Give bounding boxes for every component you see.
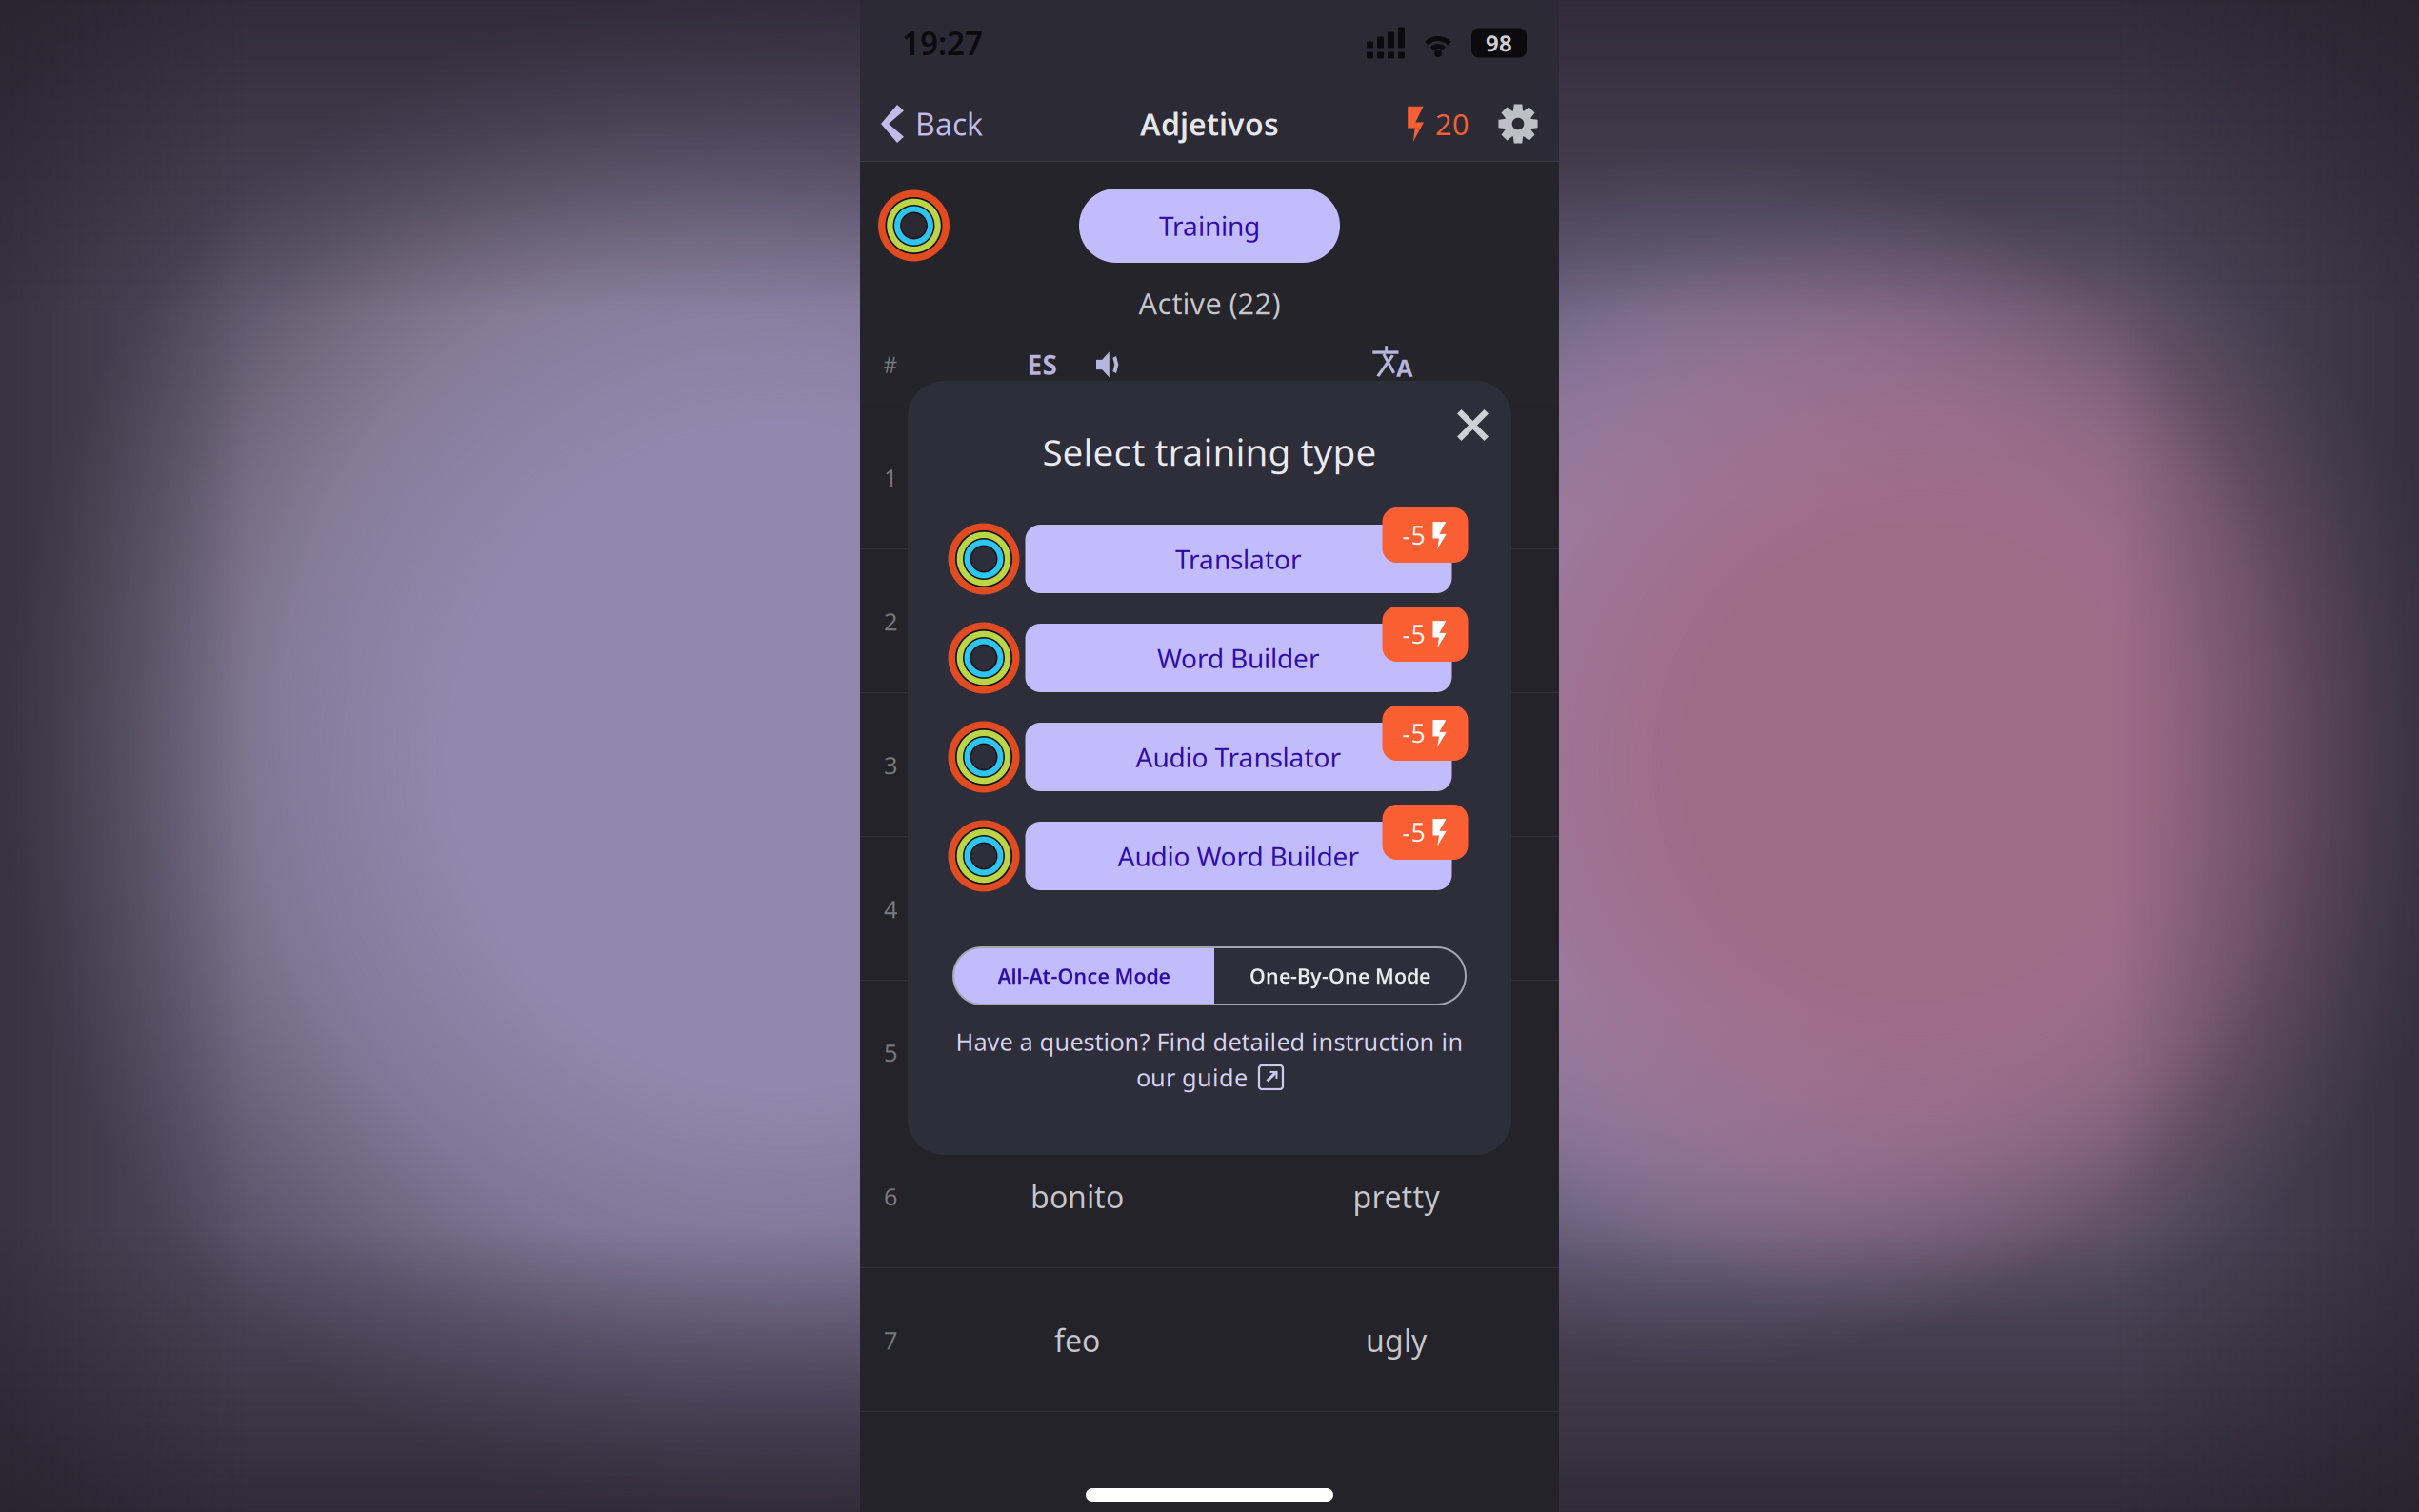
button[interactable]: One-By-One Mode [1214,947,1466,1005]
button[interactable]: 1 [860,406,1559,549]
staticText: 1 [884,462,897,493]
staticText: ugly [1366,1320,1427,1360]
button[interactable]: 4 [860,837,1559,981]
staticText: feo [1054,1320,1100,1360]
button[interactable]: 2 [860,549,1559,693]
staticText: 5 [884,1037,897,1069]
staticText: 98 [1486,28,1512,58]
staticText: 19:27 [902,22,983,64]
button[interactable]: All-At-Once Mode [953,947,1214,1005]
staticText: Translator [1175,541,1302,577]
button[interactable]: 20 [1407,91,1469,156]
staticText: Training [1159,208,1260,243]
button[interactable]: Audio Translator [948,706,1471,791]
staticText: A [1396,351,1413,383]
button[interactable]: Word Builder [948,607,1471,692]
staticText: 20 [1435,104,1469,143]
staticText: ES [1027,347,1057,382]
staticText: -5 [1402,815,1425,849]
staticText: Adjetivos [1140,104,1279,144]
button[interactable]: 6 [860,1124,1559,1268]
staticText: 7 [884,1324,897,1356]
button[interactable]: Audio Word Builder [948,805,1471,890]
staticText: # [883,350,898,379]
staticText: 4 [884,893,897,925]
staticText: Active (22) [1139,284,1280,322]
button[interactable]: 5 [860,981,1559,1124]
staticText: Word Builder [1157,640,1320,676]
staticText: 3 [884,749,897,781]
button[interactable]: Have a question? Find detailed instructi… [908,1005,1511,1093]
button[interactable]: 7 [860,1268,1559,1412]
staticText: 2 [884,605,897,637]
staticText: -5 [1402,716,1425,750]
staticText: All-At-Once Mode [998,962,1170,989]
button[interactable]: Back [881,90,983,157]
button[interactable]: Training [1079,189,1340,263]
button[interactable]: Close [1457,381,1511,441]
staticText: bonito [1030,1176,1124,1217]
button[interactable]: Settings [1498,90,1538,157]
button[interactable]: 3 [860,693,1559,837]
staticText: -5 [1402,617,1425,651]
staticText: Audio Translator [1136,739,1341,775]
staticText: pretty [1353,1176,1439,1217]
staticText: Back [915,104,983,144]
staticText: our guide [1136,1061,1248,1093]
staticText: Audio Word Builder [1118,838,1359,874]
staticText: Have a question? Find detailed instructi… [956,1025,1463,1057]
staticText: -5 [1402,518,1425,552]
button[interactable]: Translator [948,507,1471,593]
staticText: One-By-One Mode [1249,962,1430,989]
staticText: Select training type [1042,427,1377,476]
staticText: 6 [884,1180,897,1212]
